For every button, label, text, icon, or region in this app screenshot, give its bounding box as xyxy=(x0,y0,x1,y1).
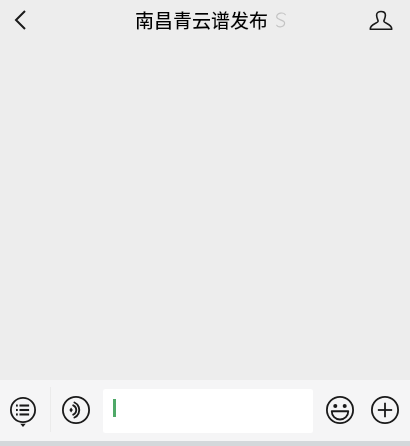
button[interactable]: Voice message xyxy=(53,379,99,440)
staticText: 南昌青云谱发布 xyxy=(135,6,269,34)
button[interactable]: Chat menu xyxy=(0,380,46,441)
button[interactable]: Emoji xyxy=(317,379,363,440)
button[interactable]: Chat info xyxy=(352,0,410,40)
button[interactable]: More functions xyxy=(362,379,408,440)
button[interactable] xyxy=(103,389,313,433)
button[interactable]: Back xyxy=(0,0,42,40)
